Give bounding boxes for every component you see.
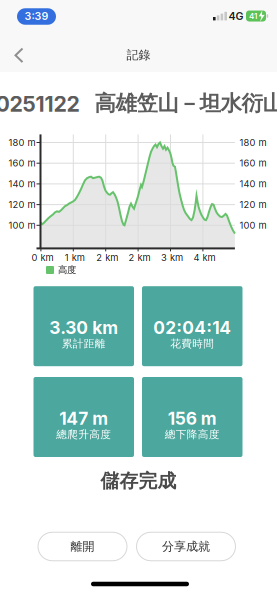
staticText: 1 km bbox=[65, 252, 85, 263]
staticText: 100 m bbox=[8, 220, 35, 231]
staticText: 41 bbox=[249, 11, 257, 21]
staticText: 花費時間 bbox=[170, 337, 214, 350]
staticText: 2 km bbox=[96, 252, 118, 263]
staticText: 140 m bbox=[8, 178, 35, 189]
staticText: 總下降高度 bbox=[165, 428, 220, 441]
staticText: 02:04:14 bbox=[153, 317, 231, 338]
staticText: 高度 bbox=[58, 264, 76, 276]
staticText: 100 m bbox=[239, 220, 266, 231]
staticText: 0251122 高雄笠山－坦水衍山 bbox=[0, 90, 277, 117]
button[interactable]: 離開 bbox=[0, 0, 277, 600]
staticText: 分享成就 bbox=[162, 539, 210, 554]
button[interactable]: 分享成就 bbox=[0, 0, 277, 600]
staticText: 160 m bbox=[239, 158, 266, 169]
staticText: 離開 bbox=[70, 539, 94, 554]
staticText: 4 km bbox=[193, 252, 215, 263]
staticText: 3.30 km bbox=[49, 317, 118, 338]
staticText: 160 m bbox=[8, 158, 35, 169]
staticText: 0 km bbox=[31, 252, 53, 263]
staticText: 2 km bbox=[129, 252, 151, 263]
staticText: 總爬升高度 bbox=[56, 428, 111, 441]
staticText: 累計距離 bbox=[62, 337, 106, 350]
staticText: 120 m bbox=[8, 199, 35, 210]
button[interactable] bbox=[0, 0, 277, 600]
staticText: 記錄 bbox=[126, 48, 150, 62]
staticText: 120 m bbox=[239, 199, 266, 210]
staticText: 4G bbox=[228, 10, 243, 22]
staticText: 156 m bbox=[168, 408, 217, 429]
staticText: 3 km bbox=[161, 252, 183, 263]
staticText: 180 m bbox=[8, 137, 35, 148]
staticText: 儲存完成 bbox=[100, 469, 176, 492]
staticText: 147 m bbox=[59, 408, 108, 429]
staticText: 140 m bbox=[239, 178, 266, 189]
staticText: 3:39 bbox=[24, 10, 48, 22]
staticText: 180 m bbox=[239, 137, 266, 148]
